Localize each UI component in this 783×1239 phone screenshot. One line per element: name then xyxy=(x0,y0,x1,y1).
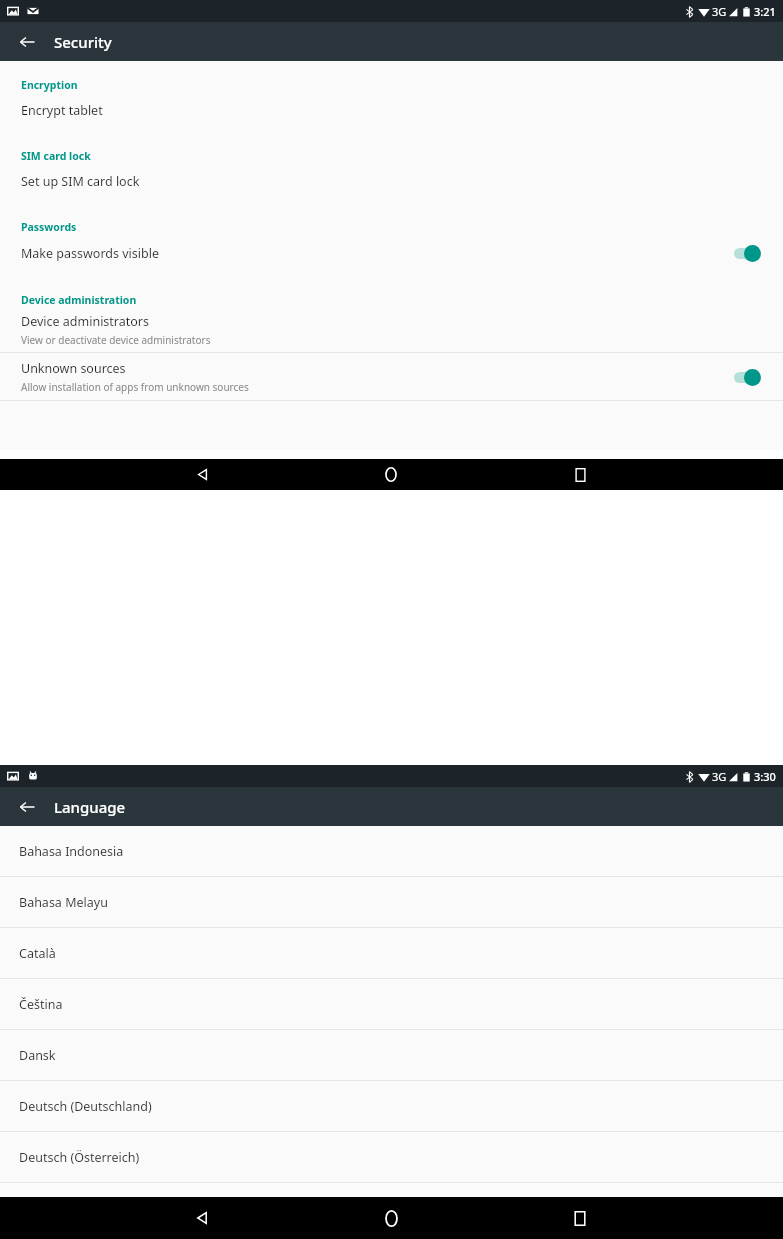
button[interactable]: Català xyxy=(0,928,783,978)
staticText: Encrypt tablet xyxy=(21,102,103,119)
button[interactable]: Home xyxy=(374,459,408,490)
staticText: View or deactivate device administrators xyxy=(21,333,211,347)
button[interactable]: Toggle on xyxy=(731,366,763,388)
staticText: Security xyxy=(54,32,112,52)
staticText: Make passwords visible xyxy=(21,245,731,262)
staticText: Encryption xyxy=(21,78,78,92)
staticText: Dansk xyxy=(19,1047,56,1064)
button[interactable]: Home xyxy=(374,1201,408,1235)
staticText: Passwords xyxy=(21,220,77,234)
staticText: Unknown sources xyxy=(21,360,126,377)
staticText: Čeština xyxy=(19,996,63,1013)
button[interactable]: Back xyxy=(185,1201,219,1235)
staticText: 3G xyxy=(712,4,727,19)
button[interactable]: Recent apps xyxy=(563,1201,597,1235)
button[interactable]: Čeština xyxy=(0,979,783,1029)
staticText: SIM card lock xyxy=(21,149,91,163)
staticText: Deutsch (Österreich) xyxy=(19,1149,140,1166)
staticText: Deutsch (Deutschland) xyxy=(19,1098,152,1115)
staticText: Set up SIM card lock xyxy=(21,173,140,190)
button[interactable]: Deutsch (Österreich) xyxy=(0,1132,783,1182)
button[interactable]: Back xyxy=(185,459,219,490)
button[interactable]: Deutsch (Deutschland) xyxy=(0,1081,783,1131)
staticText: Language xyxy=(54,797,126,817)
staticText: Device administrators xyxy=(21,313,150,330)
staticText: Allow installation of apps from unknown … xyxy=(21,380,249,394)
button[interactable]: Bahasa Melayu xyxy=(0,877,783,927)
staticText: 3G xyxy=(712,769,727,784)
button[interactable]: Back xyxy=(9,24,45,60)
button[interactable]: Make passwords visible xyxy=(0,234,783,272)
staticText: Device administration xyxy=(21,293,137,307)
button[interactable]: Set up SIM card lock xyxy=(0,163,783,199)
button[interactable]: Dansk xyxy=(0,1030,783,1080)
staticText: Bahasa Indonesia xyxy=(19,843,124,860)
button[interactable]: Bahasa Indonesia xyxy=(0,826,783,876)
staticText: Bahasa Melayu xyxy=(19,894,108,911)
button[interactable]: Back xyxy=(9,789,45,825)
button[interactable]: Encrypt tablet xyxy=(0,92,783,128)
button[interactable]: Device administrators xyxy=(0,307,783,352)
staticText: 3:30 xyxy=(754,769,776,784)
staticText: Català xyxy=(19,945,56,962)
button[interactable]: Toggle on xyxy=(731,242,763,264)
button[interactable]: Unknown sources xyxy=(0,353,783,400)
staticText: 3:21 xyxy=(754,4,776,19)
button[interactable]: Recent apps xyxy=(563,459,597,490)
